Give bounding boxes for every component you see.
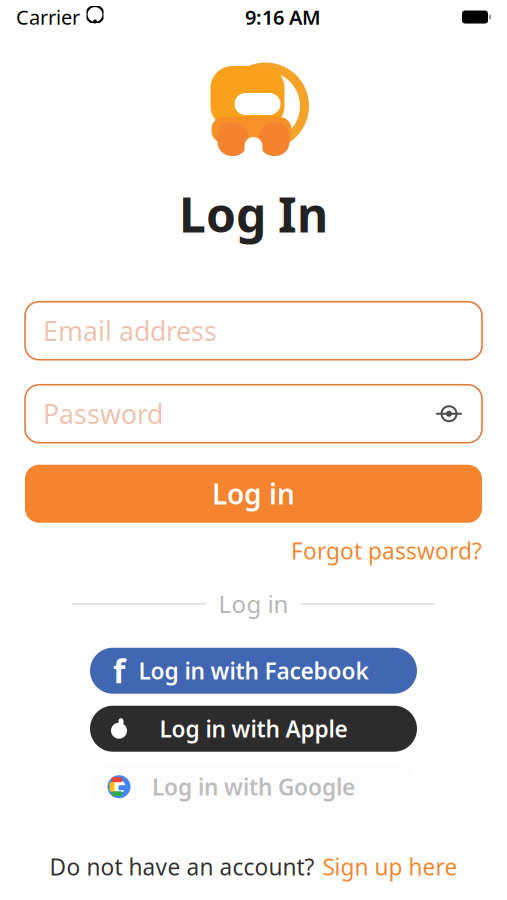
- staticText: Password: [43, 396, 163, 431]
- staticText: Log in: [218, 588, 288, 620]
- button[interactable]: Forgot password?: [291, 536, 482, 566]
- button[interactable]: Log in: [25, 465, 482, 523]
- staticText: f: [113, 649, 125, 692]
- staticText: Log In: [179, 182, 328, 246]
- staticText: Log in with Facebook: [138, 656, 368, 686]
- staticText: Log in: [212, 475, 295, 512]
- button[interactable]: Sign up here: [322, 852, 457, 882]
- staticText: Log in with Google: [152, 772, 355, 802]
- button[interactable]: Log in with Google: [90, 764, 417, 810]
- staticText: 9:16 AM: [245, 4, 321, 30]
- staticText: Email address: [43, 313, 217, 348]
- staticText: Log in with Apple: [159, 714, 347, 744]
- button[interactable]: Log in with Apple: [90, 706, 417, 752]
- button[interactable]: f: [90, 648, 417, 694]
- staticText: Forgot password?: [291, 536, 482, 566]
- staticText: Do not have an account?: [49, 852, 314, 882]
- staticText: Carrier: [16, 4, 80, 30]
- staticText: Sign up here: [322, 852, 457, 882]
- button[interactable]: Show password: [434, 401, 464, 427]
